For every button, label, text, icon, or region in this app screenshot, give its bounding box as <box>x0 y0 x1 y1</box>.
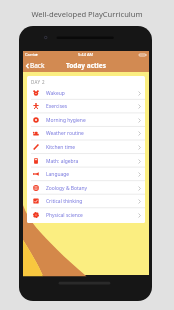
staticText: Wakeup <box>46 90 65 97</box>
button[interactable]: Language <box>27 167 145 181</box>
button[interactable]: Kitchen time <box>27 140 145 154</box>
button[interactable]: Physical science <box>27 208 145 222</box>
staticText: Today acties <box>66 61 106 70</box>
staticText: Critical thinking <box>46 198 83 205</box>
staticText: Kitchen time <box>46 144 76 151</box>
button[interactable]: Exercises <box>27 99 145 113</box>
button[interactable]: Critical thinking <box>27 194 145 208</box>
staticText: Math: algebra <box>46 158 79 165</box>
button[interactable]: Wakeup <box>27 86 145 100</box>
button[interactable]: Morning hygiene <box>27 113 145 127</box>
staticText: Exercises <box>46 103 68 110</box>
staticText: Language <box>46 171 70 178</box>
staticText: Morning hygiene <box>46 117 86 124</box>
staticText: Carrier <box>25 52 39 57</box>
staticText: Back <box>30 61 45 70</box>
staticText: 5:44 AM <box>78 52 94 57</box>
staticText: Physical science <box>46 212 83 219</box>
button[interactable]: Math: algebra <box>27 154 145 168</box>
button[interactable]: Weather routine <box>27 126 145 140</box>
staticText: Weather routine <box>46 130 84 137</box>
staticText: Zoology & Botany <box>46 185 88 192</box>
button[interactable]: Zoology & Botany <box>27 181 145 195</box>
staticText: DAY 2 <box>31 79 46 85</box>
staticText: Well-developed PlayCurriculum <box>0 9 174 19</box>
button[interactable]: Back <box>23 59 49 72</box>
